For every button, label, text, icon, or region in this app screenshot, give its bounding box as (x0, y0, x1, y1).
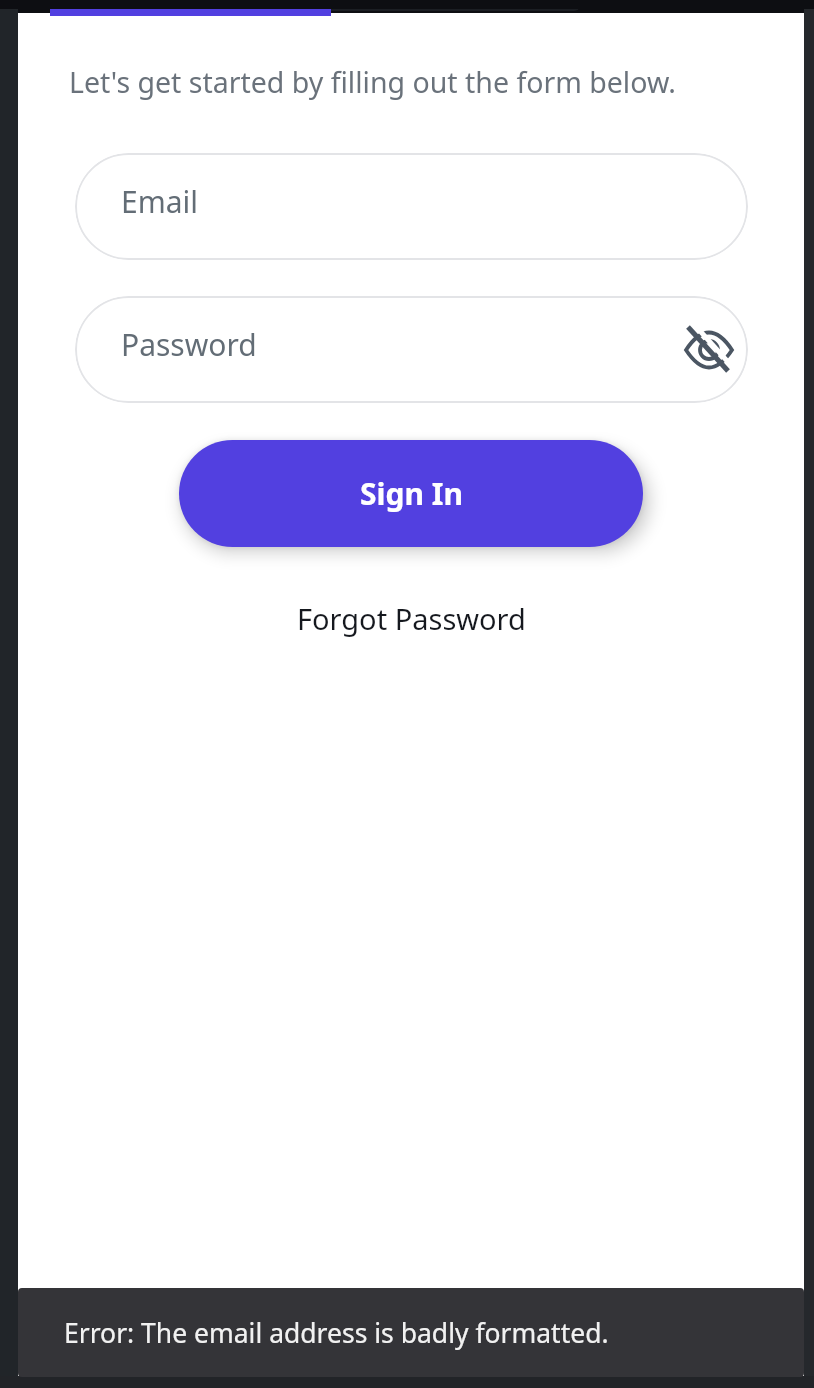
staticText: Password (121, 324, 257, 365)
staticText: Sign In (360, 473, 463, 514)
button[interactable] (687, 328, 731, 372)
staticText: Error: The email address is badly format… (64, 1315, 609, 1351)
staticText: Let's get started by filling out the for… (69, 63, 676, 102)
button[interactable]: Password (75, 296, 748, 403)
button[interactable]: Forgot Password (297, 599, 526, 638)
button[interactable]: Error: The email address is badly format… (18, 1288, 804, 1377)
staticText: Email (121, 181, 199, 222)
button[interactable]: Sign In (179, 440, 643, 547)
button[interactable]: Email (75, 153, 748, 260)
